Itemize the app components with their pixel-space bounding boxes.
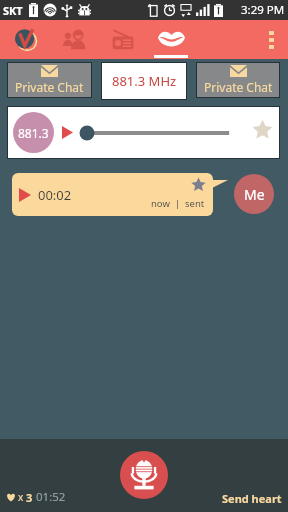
staticText: 3:29 PM	[241, 2, 285, 18]
staticText: Private Chat	[15, 79, 84, 95]
staticText: 01:52	[36, 489, 66, 505]
button[interactable]: Send heart	[219, 488, 285, 509]
button[interactable]: Record	[120, 451, 168, 499]
staticText: Private Chat	[204, 79, 273, 95]
button[interactable]: Friends	[51, 20, 99, 59]
button[interactable]: More options	[254, 20, 288, 59]
button[interactable]: Radio	[99, 20, 147, 59]
staticText: SKT	[3, 3, 23, 18]
button[interactable]: Private Chat	[197, 63, 279, 97]
staticText: Send heart	[222, 491, 282, 506]
button[interactable]: 881.3 MHz	[102, 63, 186, 99]
button[interactable]: Home	[2, 20, 50, 59]
button[interactable]: 881.3	[8, 107, 279, 158]
button[interactable]: Me	[234, 174, 274, 214]
button[interactable]: Chat	[147, 20, 195, 59]
staticText: 3	[26, 490, 33, 505]
button[interactable]: 00:02	[12, 173, 213, 216]
staticText: 881.3 MHz	[112, 72, 177, 90]
staticText: Me	[244, 185, 265, 204]
staticText: 881.3	[18, 125, 49, 141]
staticText: now | sent	[151, 197, 205, 210]
staticText: 00:02	[38, 186, 72, 204]
button[interactable]: Private Chat	[8, 63, 91, 97]
staticText: x	[18, 490, 24, 504]
